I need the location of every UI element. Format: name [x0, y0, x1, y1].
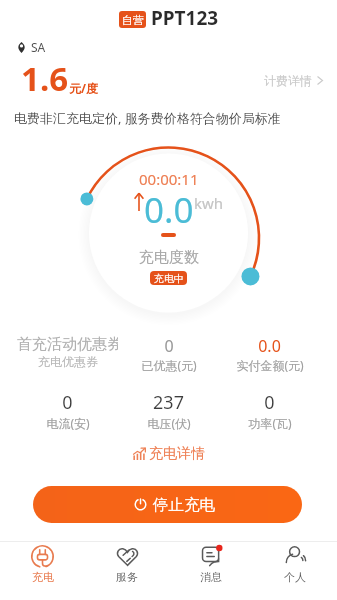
staticText: 充电优惠券	[38, 354, 98, 369]
staticText: 自营	[122, 13, 144, 27]
staticText: PPT123	[151, 5, 219, 31]
staticText: 计费详情	[264, 73, 312, 88]
button[interactable]: 充电	[0, 542, 85, 584]
staticText: kwh	[194, 193, 224, 213]
staticText: 237	[153, 390, 184, 415]
staticText: 实付金额(元)	[236, 357, 304, 373]
button[interactable]: 计费详情	[264, 70, 323, 91]
staticText: 0.0	[258, 335, 281, 357]
staticText: 首充活动优惠券	[17, 335, 118, 354]
other: 消息	[200, 545, 223, 568]
staticText: 已优惠(元)	[141, 357, 197, 373]
staticText: 0.0	[144, 186, 194, 234]
staticText: 00:00:11	[139, 169, 199, 189]
staticText: 电流(安)	[46, 415, 90, 431]
staticText: 电费非汇充电定价, 服务费价格符合物价局标准	[14, 109, 281, 127]
staticText: 服务	[116, 570, 138, 584]
button[interactable]: 服务	[85, 542, 169, 584]
staticText: 个人	[284, 570, 306, 584]
button[interactable]: 停止充电	[33, 486, 302, 523]
other: 充电	[31, 545, 54, 568]
staticText: 电压(伏)	[147, 415, 191, 431]
staticText: 充电详情	[149, 445, 205, 463]
other: 服务	[116, 546, 139, 567]
staticText: 消息	[200, 570, 222, 584]
staticText: 充电中	[154, 272, 184, 285]
staticText: 0	[62, 390, 73, 415]
staticText: 功率(瓦)	[248, 415, 292, 431]
button[interactable]: 消息	[169, 542, 253, 584]
staticText: 1.6	[21, 56, 69, 101]
staticText: 元/度	[69, 80, 98, 96]
other: 个人	[284, 545, 307, 568]
button[interactable]: 个人	[253, 542, 337, 584]
staticText: 停止充电	[153, 495, 215, 515]
staticText: 充电	[32, 570, 54, 584]
staticText: SA	[31, 39, 46, 55]
button[interactable]: 充电详情	[129, 443, 209, 465]
staticText: 0	[164, 335, 174, 357]
staticText: 0	[264, 390, 275, 415]
staticText: 充电度数	[139, 248, 199, 267]
